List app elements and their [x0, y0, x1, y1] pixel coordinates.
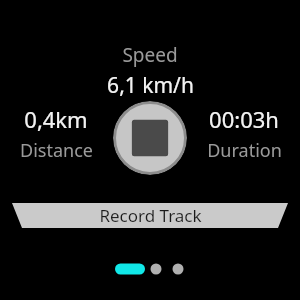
staticText: 6,1 km/h	[107, 71, 194, 100]
staticText: Speed	[122, 42, 178, 68]
button[interactable]: Record Track	[0, 203, 300, 228]
staticText: Record Track	[99, 204, 202, 227]
staticText: Distance	[20, 138, 93, 163]
staticText: Duration	[207, 138, 282, 163]
staticText: 00:03h	[209, 104, 279, 134]
button[interactable]: Stop recording	[113, 101, 187, 175]
staticText: 0,4km	[24, 104, 88, 134]
